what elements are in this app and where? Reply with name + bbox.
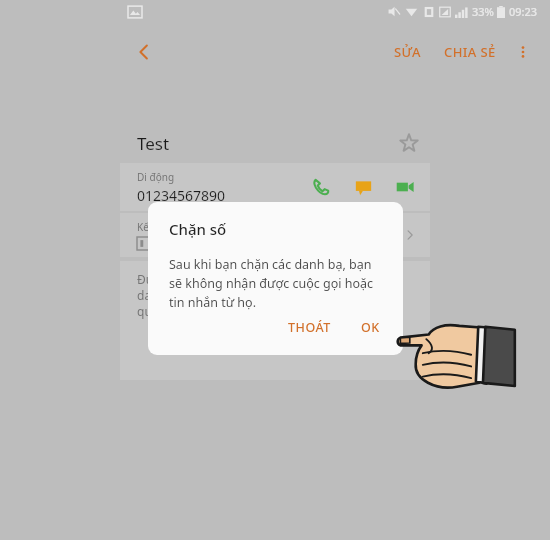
- staticText: Được thêm vào: [137, 271, 224, 287]
- staticText: 09:23: [509, 4, 538, 19]
- button[interactable]: Video call: [388, 170, 422, 204]
- button[interactable]: Kết nối: [120, 213, 430, 257]
- staticText: CHIA SẺ: [444, 43, 496, 61]
- staticText: Test: [137, 132, 170, 155]
- button[interactable]: Được thêm vào: [120, 261, 430, 380]
- staticText: quảng cáo: [137, 303, 197, 319]
- staticText: Kết nối: [137, 220, 170, 234]
- button[interactable]: OK: [352, 313, 389, 342]
- staticText: Chặn số: [169, 219, 227, 239]
- button[interactable]: Di động: [120, 163, 430, 211]
- button[interactable]: More options: [506, 35, 540, 69]
- button[interactable]: Message: [346, 170, 380, 204]
- staticText: SỬA: [394, 43, 422, 61]
- staticText: 33%: [472, 4, 494, 19]
- staticText: danh sách chặn: [137, 287, 226, 303]
- button[interactable]: THOÁT: [279, 313, 340, 342]
- staticText: OK: [361, 319, 380, 336]
- staticText: Di động: [137, 170, 175, 184]
- staticText: 01234567890: [137, 186, 226, 205]
- button[interactable]: SỬA: [388, 35, 428, 69]
- button[interactable]: Back: [124, 32, 164, 72]
- button[interactable]: Favourite: [392, 126, 426, 160]
- staticText: THOÁT: [288, 319, 331, 336]
- staticText: Sau khi bạn chặn các danh bạ, bạn sẽ khô…: [169, 256, 385, 311]
- button[interactable]: Call: [304, 170, 338, 204]
- button[interactable]: CHIA SẺ: [438, 35, 502, 69]
